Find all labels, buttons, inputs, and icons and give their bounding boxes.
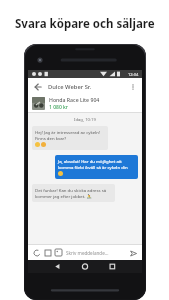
button[interactable]: Gallery <box>54 248 63 257</box>
button[interactable]: Ja, absolut! Har du möjlighet att komma … <box>55 155 138 179</box>
staticText: Det funkar! Kan du skicka adress så komm… <box>35 187 107 199</box>
button[interactable]: More options <box>127 81 138 92</box>
button[interactable]: Attach file <box>32 248 41 257</box>
staticText: Honda Race Lite 904 <box>49 96 100 103</box>
staticText: Hej! Jag är intresserad av cykeln! Finns… <box>35 129 101 141</box>
staticText: 1 080 kr <box>49 104 68 111</box>
button[interactable]: Hej! Jag är intresserad av cykeln! Finns… <box>32 126 108 150</box>
staticText: Skriv meddelande... <box>66 250 128 256</box>
button[interactable]: Honda Race Lite 904 <box>28 95 142 112</box>
staticText: Ja, absolut! Har du möjlighet att komma … <box>58 158 128 170</box>
button[interactable]: Send <box>128 248 138 258</box>
button[interactable]: Back <box>32 81 43 92</box>
staticText: Idag, 10:19 <box>74 117 96 123</box>
staticText: 12:04 <box>128 72 139 77</box>
staticText: Svara köpare och säljare <box>15 16 155 32</box>
button[interactable]: Det funkar! Kan du skicka adress så komm… <box>32 184 115 202</box>
button[interactable]: Camera <box>43 248 52 257</box>
staticText: Dulce Weber Sr. <box>48 83 127 91</box>
